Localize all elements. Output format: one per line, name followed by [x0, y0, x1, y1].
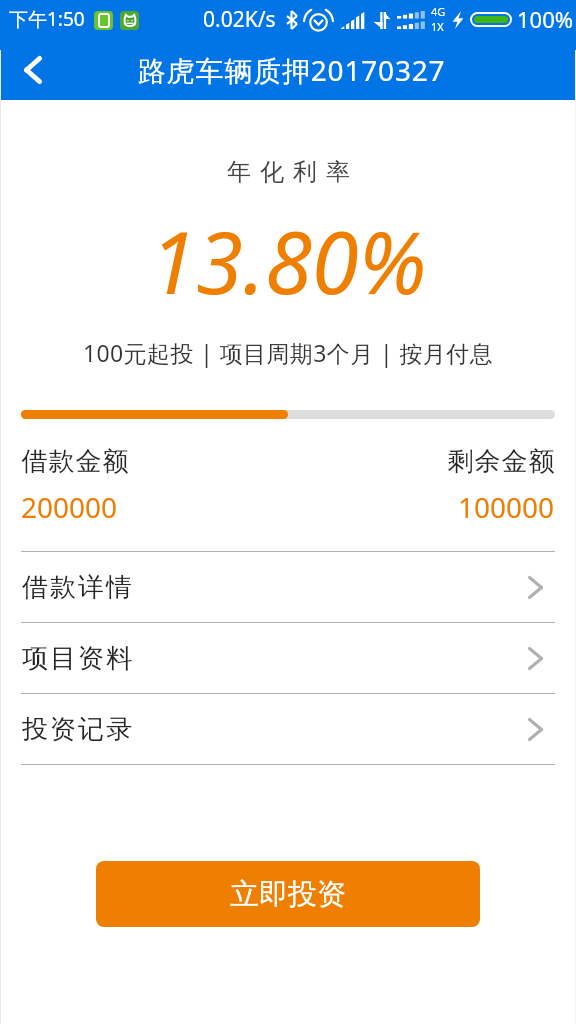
staticText: 路虎车辆质押20170327 — [138, 51, 446, 89]
staticText: 4G — [431, 4, 446, 19]
button[interactable]: 借款详情 — [0, 552, 576, 622]
staticText: 200000 — [21, 488, 118, 526]
staticText: 0.02K/s — [203, 5, 276, 34]
button[interactable]: 投资记录 — [0, 694, 576, 764]
staticText: 年化利率 — [5, 157, 576, 187]
staticText: 剩余金额 — [447, 445, 555, 478]
staticText: 13.80% — [0, 203, 576, 319]
staticText: 项目资料 — [21, 642, 133, 675]
staticText: 立即投资 — [230, 876, 346, 913]
button[interactable]: 项目资料 — [0, 623, 576, 693]
staticText: 下午1:50 — [9, 6, 85, 32]
staticText: 借款详情 — [21, 571, 133, 604]
staticText: 投资记录 — [21, 713, 133, 746]
staticText: 100元起投 | 项目周期3个月 | 按月付息 — [0, 337, 576, 368]
staticText: 1X — [431, 19, 444, 34]
staticText: 借款金额 — [21, 445, 129, 478]
staticText: 100000 — [458, 488, 555, 526]
button[interactable]: 立即投资 — [96, 861, 480, 927]
button[interactable]: Back — [0, 40, 60, 100]
staticText: 100% — [517, 4, 574, 34]
